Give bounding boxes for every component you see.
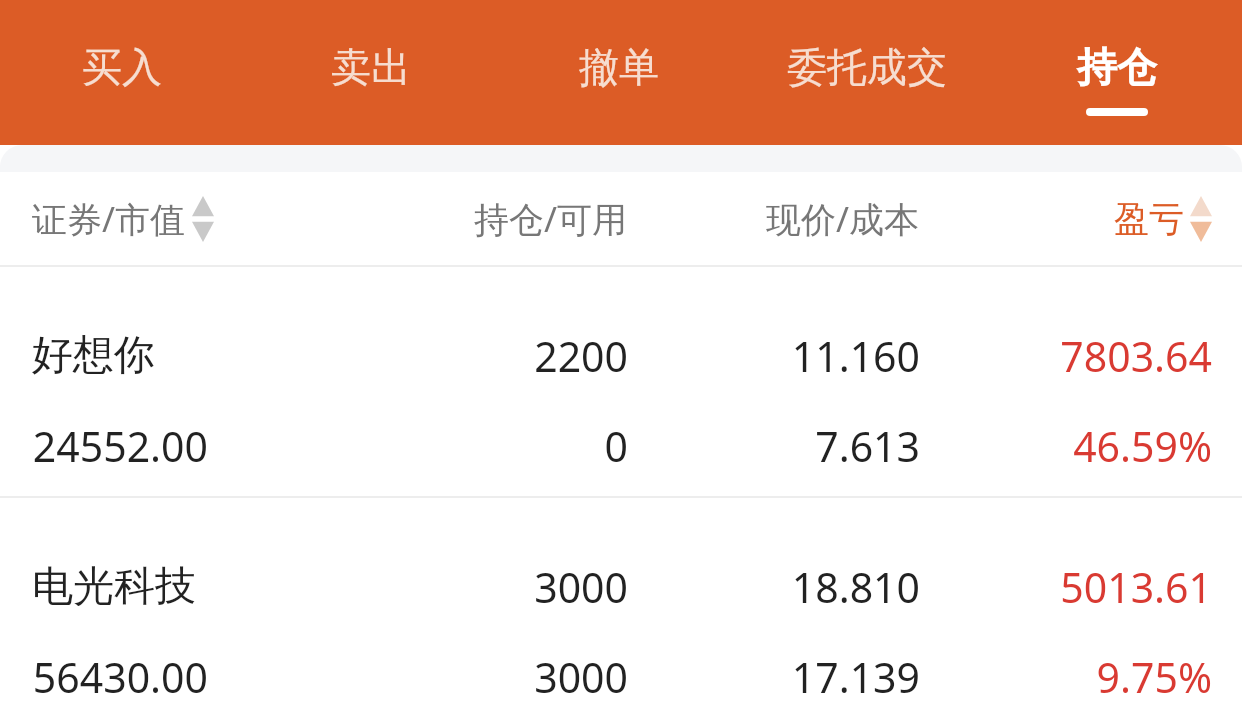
staticText: 委托成交 xyxy=(787,42,947,92)
button[interactable]: 电光科技 xyxy=(0,498,1242,719)
staticText: 盈亏 xyxy=(1114,197,1184,241)
staticText: 7.613 xyxy=(815,418,920,474)
staticText: 好想你 xyxy=(32,330,155,382)
staticText: 9.75% xyxy=(1096,649,1212,705)
staticText: 撤单 xyxy=(579,42,659,92)
button[interactable]: 证券/市值 xyxy=(32,195,214,243)
staticText: 0 xyxy=(604,418,628,474)
staticText: 现价/成本 xyxy=(766,195,920,243)
staticText: 卖出 xyxy=(331,42,411,92)
button[interactable]: 买入 xyxy=(22,0,222,145)
button[interactable]: 好想你 xyxy=(0,267,1242,496)
button[interactable]: 撤单 xyxy=(519,0,719,145)
staticText: 56430.00 xyxy=(32,649,208,705)
staticText: 3000 xyxy=(534,649,628,705)
button[interactable]: 现价/成本 xyxy=(670,172,920,265)
staticText: 11.160 xyxy=(791,328,920,384)
staticText: 5013.61 xyxy=(1060,559,1212,615)
staticText: 持仓/可用 xyxy=(474,195,628,243)
staticText: 17.139 xyxy=(791,649,920,705)
staticText: 46.59% xyxy=(1073,418,1212,474)
staticText: 2200 xyxy=(534,328,628,384)
staticText: 电光科技 xyxy=(32,561,196,613)
button[interactable]: 盈亏 xyxy=(1114,196,1212,242)
staticText: 3000 xyxy=(534,559,628,615)
staticText: 持仓 xyxy=(1077,42,1157,92)
button[interactable]: 持仓/可用 xyxy=(378,172,628,265)
staticText: 18.810 xyxy=(791,559,920,615)
staticText: 买入 xyxy=(82,42,162,92)
staticText: 证券/市值 xyxy=(32,195,186,243)
button[interactable]: 卖出 xyxy=(271,0,471,145)
button[interactable]: 委托成交 xyxy=(767,0,967,145)
button[interactable]: 持仓 xyxy=(1017,0,1217,145)
staticText: 7803.64 xyxy=(1060,328,1212,384)
staticText: 24552.00 xyxy=(32,418,208,474)
